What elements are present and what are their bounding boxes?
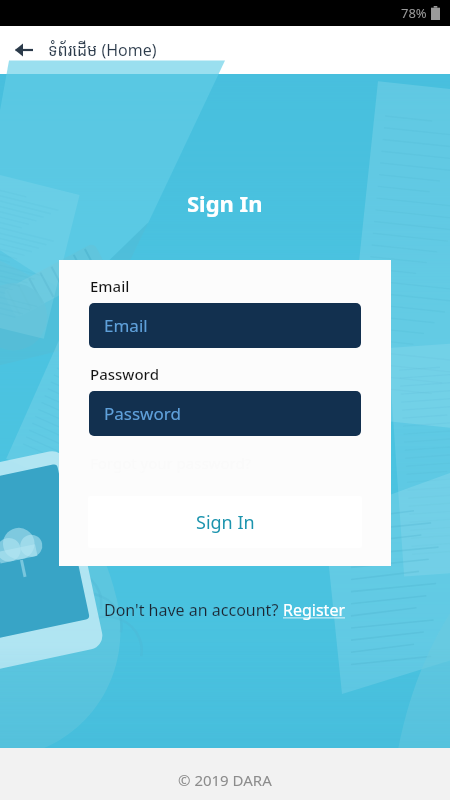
- staticText: ទំព័រដើម (Home): [48, 39, 157, 61]
- button[interactable]: Password: [89, 391, 361, 436]
- button[interactable]: Back: [0, 26, 48, 74]
- staticText: Email: [104, 314, 148, 337]
- staticText: 78%: [401, 4, 427, 22]
- staticText: Sign In: [187, 188, 263, 218]
- staticText: Email: [90, 276, 130, 296]
- staticText: © 2019 DARA: [178, 770, 272, 790]
- button[interactable]: Sign In: [88, 496, 362, 548]
- button[interactable]: Email: [89, 303, 361, 348]
- staticText: Sign In: [196, 510, 255, 535]
- staticText: Register: [283, 599, 346, 621]
- staticText: Password: [104, 402, 181, 425]
- staticText: Don't have an account?: [104, 599, 283, 621]
- button[interactable]: Don't have an account?: [104, 599, 346, 621]
- staticText: Password: [90, 364, 159, 384]
